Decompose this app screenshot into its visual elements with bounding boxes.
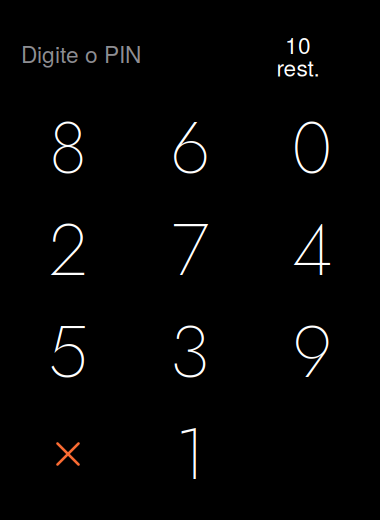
- staticText: 9: [292, 300, 331, 404]
- staticText: 0: [291, 96, 332, 200]
- button[interactable]: Cancel: [7, 403, 129, 505]
- staticText: 3: [170, 300, 210, 404]
- staticText: rest.: [276, 50, 319, 83]
- button[interactable]: 8: [7, 97, 129, 199]
- button[interactable]: 0: [251, 97, 373, 199]
- staticText: 6: [170, 96, 209, 200]
- staticText: 7: [171, 198, 208, 302]
- staticText: 5: [48, 300, 88, 404]
- button[interactable]: 5: [7, 301, 129, 403]
- staticText: 2: [49, 198, 87, 302]
- staticText: 10: [285, 28, 311, 60]
- button[interactable]: 9: [251, 301, 373, 403]
- button[interactable]: 7: [129, 199, 251, 301]
- staticText: 8: [49, 96, 87, 200]
- button[interactable]: 4: [251, 199, 373, 301]
- button[interactable]: 3: [129, 301, 251, 403]
- staticText: Digite o PIN: [21, 37, 141, 69]
- staticText: 1: [175, 402, 205, 506]
- button[interactable]: 1: [129, 403, 251, 505]
- staticText: 4: [292, 198, 332, 302]
- button[interactable]: 6: [129, 97, 251, 199]
- button[interactable]: 2: [7, 199, 129, 301]
